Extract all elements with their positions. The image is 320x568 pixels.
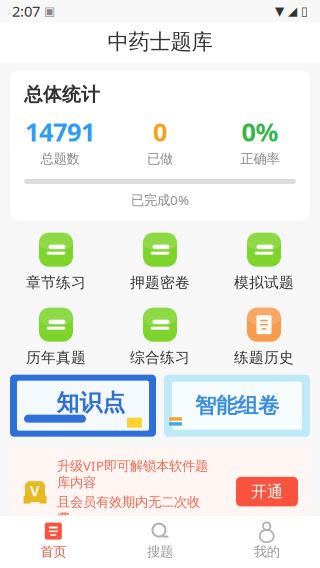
staticText: 我的 [254,544,280,560]
staticText: 搜题 [147,544,173,560]
button[interactable]: 押题密卷 [108,233,212,292]
staticText: 练题历史 [234,349,294,367]
staticText: ▼ [275,4,284,18]
staticText: 智能组卷 [195,393,279,419]
staticText: 2:07 [12,1,40,21]
staticText: 14791 [25,115,95,148]
staticText: 章节练习 [26,274,86,292]
staticText: 总题数 [40,151,79,167]
staticText: 正确率 [240,151,279,167]
staticText: ▯ [297,4,308,18]
staticText: 已做 [147,151,173,167]
button[interactable]: V [10,447,310,536]
staticText: 0% [241,115,278,148]
staticText: 历年真题 [26,349,86,367]
staticText: V [30,481,40,500]
staticText: 模拟试题 [234,274,294,292]
staticText: 总体统计 [24,83,100,106]
staticText: 中药士题库 [107,29,212,55]
button[interactable]: 章节练习 [4,233,108,292]
button[interactable]: 综合练习 [108,308,212,367]
staticText: 开通 [251,482,283,501]
button[interactable]: 我的 [213,522,320,560]
button[interactable]: 模拟试题 [212,233,316,292]
staticText: 且会员有效期内无二次收费 [57,494,200,527]
staticText: 升级VIP即可解锁本软件题库内容 [57,457,208,491]
staticText: 押题密卷 [130,274,190,292]
button[interactable]: 智能组卷 [164,375,310,437]
staticText: ▣ [40,4,55,18]
button[interactable]: 历年真题 [4,308,108,367]
staticText: 首页 [40,544,66,560]
staticText: 0 [153,115,167,148]
button[interactable]: 搜题 [107,522,213,560]
staticText: ◢ [284,4,297,18]
staticText: 知识点 [56,389,125,417]
staticText: 已完成0% [131,191,189,209]
staticText: 综合练习 [130,349,190,367]
staticText: 中医学基础 [12,553,97,568]
button[interactable]: 首页 [0,522,107,560]
button[interactable]: 中医学基础 [0,542,320,568]
button[interactable]: 知识点 [10,375,156,437]
button[interactable]: 练题历史 [212,308,316,367]
